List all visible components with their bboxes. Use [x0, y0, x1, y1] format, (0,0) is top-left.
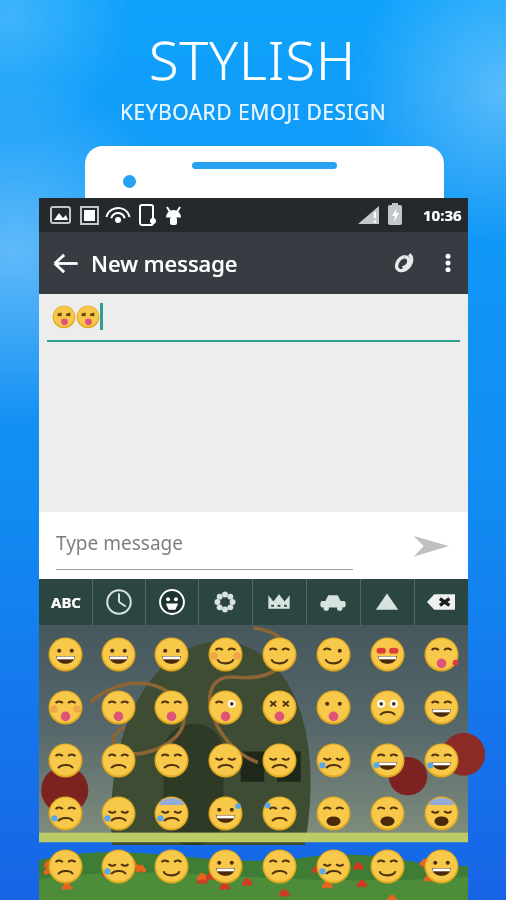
button[interactable]: Emoji 11: [145, 681, 198, 734]
button[interactable]: Emoji 18: [92, 734, 145, 787]
button[interactable]: Emoji 10: [92, 681, 145, 734]
button[interactable]: Nature: [198, 579, 252, 625]
button[interactable]: Emoji 2: [92, 628, 145, 681]
button[interactable]: Emoji 33: [39, 840, 92, 893]
button[interactable]: Emoji 17: [39, 734, 92, 787]
button[interactable]: Emoji 8: [414, 628, 468, 681]
button[interactable]: Emoji 37: [252, 840, 306, 893]
staticText: 10:36: [423, 205, 462, 225]
button[interactable]: Backspace: [414, 579, 468, 625]
button[interactable]: Emoji 9: [39, 681, 92, 734]
button[interactable]: Emoji 27: [145, 787, 198, 840]
button[interactable]: Emoji 31: [360, 787, 414, 840]
button[interactable]: Emoji 26: [92, 787, 145, 840]
button[interactable]: Emoji 36: [198, 840, 252, 893]
button[interactable]: Emoji 6: [306, 628, 360, 681]
button[interactable]: Emoji 20: [198, 734, 252, 787]
button[interactable]: Emoji 13: [252, 681, 306, 734]
button[interactable]: Emoji 7: [360, 628, 414, 681]
staticText: ABC: [51, 592, 81, 612]
button[interactable]: Emoji 12: [198, 681, 252, 734]
button[interactable]: Emoji 32: [414, 787, 468, 840]
button[interactable]: Emoji 14: [306, 681, 360, 734]
button[interactable]: Emoji 3: [145, 628, 198, 681]
button[interactable]: Emoji 22: [306, 734, 360, 787]
button[interactable]: Back: [39, 237, 91, 289]
staticText: New message: [91, 248, 376, 278]
button[interactable]: Emoji 28: [198, 787, 252, 840]
button[interactable]: Emoji 29: [252, 787, 306, 840]
button[interactable]: Emoji 40: [414, 840, 468, 893]
button[interactable]: Emoji 35: [145, 840, 198, 893]
button[interactable]: Travel: [306, 579, 360, 625]
button[interactable]: Emoji 24: [414, 734, 468, 787]
button[interactable]: More options: [428, 243, 468, 283]
button[interactable]: Objects: [252, 579, 306, 625]
button[interactable]: Emoji 15: [360, 681, 414, 734]
staticText: KEYBOARD EMOJI DESIGN: [120, 98, 387, 127]
staticText: Type message: [56, 530, 183, 556]
button[interactable]: Attach file: [376, 237, 428, 289]
button[interactable]: Emoji 4: [198, 628, 252, 681]
staticText: STYLISH: [149, 22, 357, 96]
button[interactable]: Emoji 21: [252, 734, 306, 787]
button[interactable]: Emoji 23: [360, 734, 414, 787]
button[interactable]: Emoji 16: [414, 681, 468, 734]
button[interactable]: Symbols: [360, 579, 414, 625]
button[interactable]: Emoji 25: [39, 787, 92, 840]
button[interactable]: Emoji 19: [145, 734, 198, 787]
button[interactable]: Emoji 38: [306, 840, 360, 893]
button[interactable]: Emoji 30: [306, 787, 360, 840]
button[interactable]: Emoji 39: [360, 840, 414, 893]
button[interactable]: Emoji 1: [39, 628, 92, 681]
button[interactable]: Recent: [92, 579, 145, 625]
button[interactable]: Emoji 5: [252, 628, 306, 681]
button[interactable]: ABC: [39, 579, 92, 625]
button[interactable]: Smileys: [145, 579, 198, 625]
button[interactable]: Emoji 34: [92, 840, 145, 893]
button[interactable]: Send: [404, 519, 458, 573]
